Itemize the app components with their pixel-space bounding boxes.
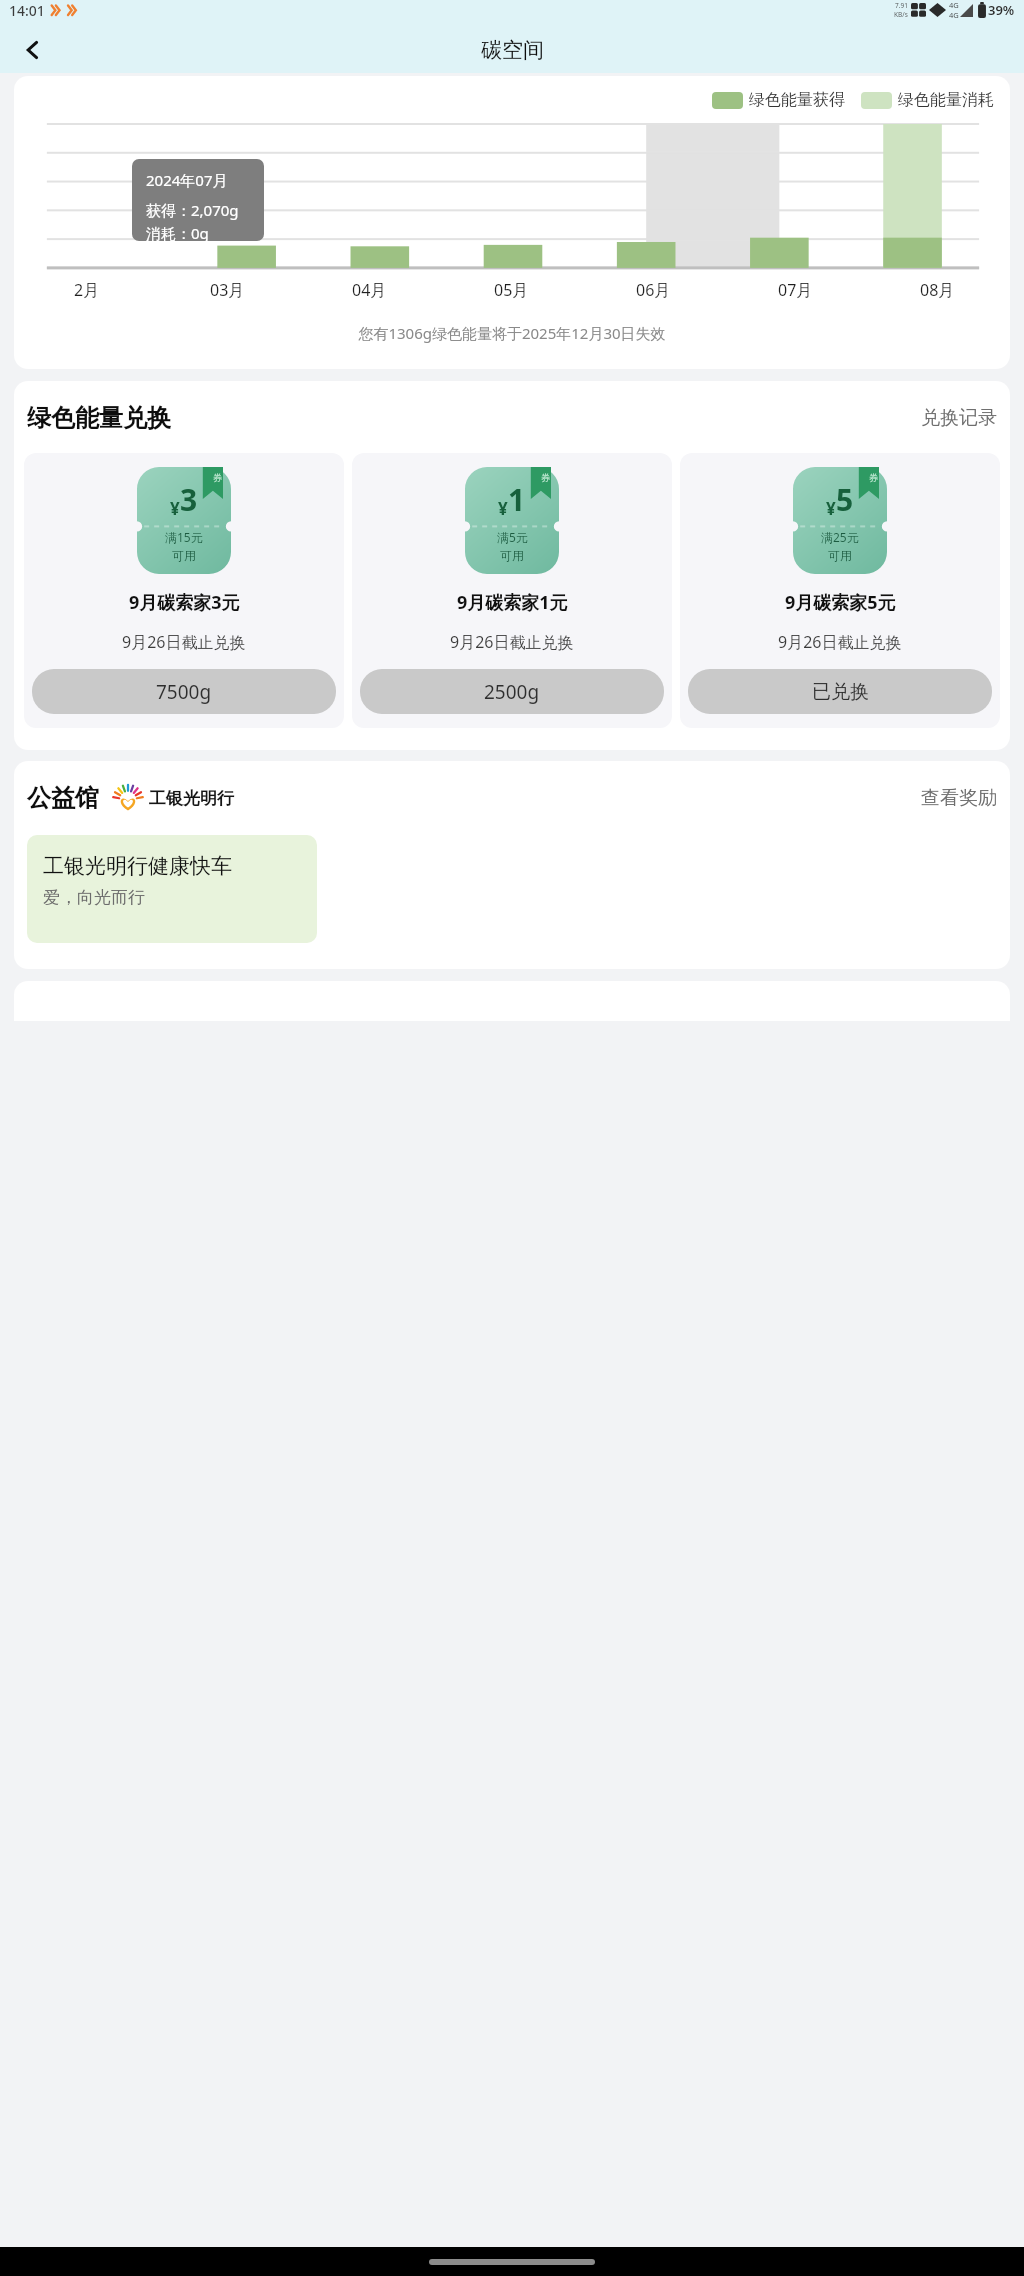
staticText: 可用 xyxy=(500,548,524,563)
button[interactable]: Back xyxy=(12,29,54,71)
staticText: ¥ xyxy=(498,497,508,520)
staticText: 可用 xyxy=(172,548,196,563)
staticText: 08月 xyxy=(920,279,955,301)
staticText: ¥ xyxy=(170,497,180,520)
staticText: 9月碳索家5元 xyxy=(785,590,896,615)
button[interactable]: 工银光明行健康快车 xyxy=(27,835,317,943)
staticText: 满5元 xyxy=(497,529,528,545)
staticText: 兑换记录 xyxy=(921,406,997,430)
staticText: 9月26日截止兑换 xyxy=(778,631,902,653)
staticText: 3 xyxy=(180,479,198,520)
button[interactable]: ¥ xyxy=(680,453,1000,728)
button[interactable]: 兑换记录 xyxy=(921,406,997,430)
staticText: 04月 xyxy=(352,279,387,301)
staticText: 9月碳索家3元 xyxy=(129,590,240,615)
staticText: 查看奖励 xyxy=(921,786,997,810)
staticText: 06月 xyxy=(636,279,671,301)
button[interactable]: 2500g xyxy=(360,669,664,714)
staticText: 已兑换 xyxy=(812,680,869,704)
staticText: ¥ xyxy=(826,497,836,520)
staticText: 绿色能量获得 xyxy=(749,90,845,110)
staticText: 爱，向光而行 xyxy=(43,887,145,908)
staticText: 绿色能量消耗 xyxy=(898,90,994,110)
staticText: 券 xyxy=(213,472,222,483)
staticText: 4G xyxy=(949,10,959,20)
staticText: 获得：2,070g xyxy=(146,200,239,220)
staticText: 消耗：0g xyxy=(146,223,209,241)
staticText: 9月26日截止兑换 xyxy=(122,631,246,653)
button[interactable]: 查看奖励 xyxy=(921,786,997,810)
staticText: KB/s xyxy=(894,10,908,19)
staticText: 14:01 xyxy=(9,1,45,20)
staticText: 2月 xyxy=(74,279,100,301)
staticText: 4G xyxy=(949,0,959,10)
staticText: 9月26日截止兑换 xyxy=(450,631,574,653)
staticText: 2500g xyxy=(484,679,540,705)
staticText: 03月 xyxy=(210,279,245,301)
button[interactable]: ¥ xyxy=(24,453,344,728)
staticText: 39% xyxy=(988,1,1015,19)
staticText: 绿色能量兑换 xyxy=(27,403,171,433)
staticText: 9月碳索家1元 xyxy=(457,590,568,615)
staticText: 券 xyxy=(869,472,878,483)
staticText: 券 xyxy=(541,472,550,483)
staticText: 07月 xyxy=(778,279,813,301)
staticText: 工银光明行健康快车 xyxy=(43,853,232,879)
staticText: 您有1306g绿色能量将于2025年12月30日失效 xyxy=(14,323,1010,343)
staticText: 05月 xyxy=(494,279,529,301)
staticText: 公益馆 xyxy=(27,783,99,813)
staticText: 1 xyxy=(508,479,526,520)
button[interactable]: ¥ xyxy=(352,453,672,728)
staticText: 5 xyxy=(836,479,854,520)
staticText: 7.91 xyxy=(895,1,908,10)
button[interactable]: 7500g xyxy=(32,669,336,714)
staticText: 工银光明行 xyxy=(149,788,234,809)
staticText: 7500g xyxy=(156,679,212,705)
staticText: 2024年07月 xyxy=(146,170,228,190)
button[interactable]: 已兑换 xyxy=(688,669,992,714)
staticText: 可用 xyxy=(828,548,852,563)
staticText: 满25元 xyxy=(821,529,859,545)
staticText: 满15元 xyxy=(165,529,203,545)
staticText: 碳空间 xyxy=(481,37,544,63)
